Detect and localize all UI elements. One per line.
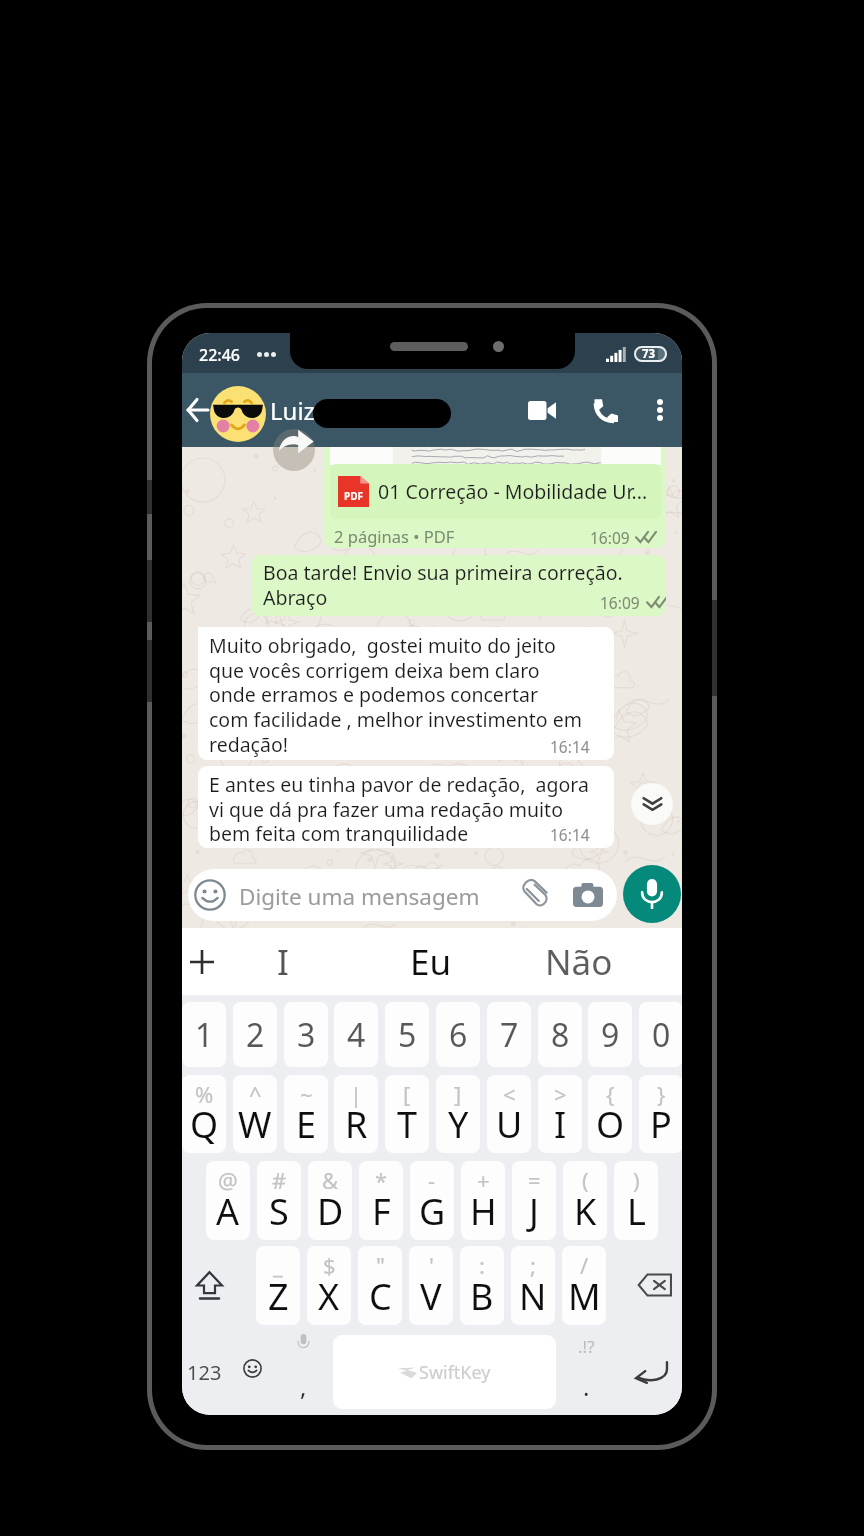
button[interactable]: # (257, 1161, 301, 1240)
staticText: X (318, 1272, 340, 1321)
staticText: E antes eu tinha pavor de redação, agora (209, 771, 589, 798)
staticText: Muito obrigado, gostei muito do jeito (209, 632, 556, 659)
staticText: W (238, 1100, 272, 1149)
staticText: { (606, 1079, 615, 1109)
button[interactable]: Emoji (231, 1346, 274, 1390)
staticText: com facilidade , melhor investimento em (209, 706, 582, 733)
staticText: Não (545, 938, 613, 986)
staticText: P (650, 1100, 672, 1149)
staticText: # (272, 1165, 287, 1195)
staticText: 16:14 (550, 736, 590, 757)
button[interactable]: .!? (564, 1330, 608, 1415)
staticText: PDF (344, 489, 364, 503)
button[interactable]: 6 (436, 1002, 480, 1067)
button[interactable]: - (410, 1161, 454, 1240)
button[interactable]: < (487, 1075, 531, 1153)
staticText: @ (218, 1165, 238, 1195)
staticText: I (554, 1100, 567, 1149)
button[interactable]: [ (385, 1075, 429, 1153)
button[interactable]: 0 (639, 1002, 682, 1067)
staticText: " (376, 1250, 385, 1280)
button[interactable]: Boa tarde! Envio sua primeira correção. (251, 555, 666, 616)
button[interactable]: $ (307, 1246, 351, 1325)
button[interactable]: ~ (284, 1075, 328, 1153)
staticText: $ (323, 1250, 336, 1280)
button[interactable]: / (562, 1246, 606, 1325)
button[interactable]: % (182, 1075, 226, 1153)
button[interactable]: 4 (334, 1002, 378, 1067)
button[interactable]: Voice call (579, 382, 631, 438)
button[interactable]: Muito obrigado, gostei muito do jeito (198, 627, 614, 760)
button[interactable]: 3 (284, 1002, 328, 1067)
button[interactable]: Enter (620, 1346, 682, 1398)
staticText: * (375, 1165, 388, 1195)
button[interactable]: 5 (385, 1002, 429, 1067)
button[interactable]: I (243, 928, 323, 995)
button[interactable]: _ (256, 1246, 300, 1325)
button[interactable]: ^ (233, 1075, 277, 1153)
staticText: bem feita com tranquilidade (209, 820, 469, 847)
button[interactable]: Back (182, 373, 210, 447)
staticText: G (419, 1187, 446, 1236)
staticText: ] (454, 1079, 462, 1109)
button[interactable]: @ (206, 1161, 250, 1240)
staticText: SwiftKey (419, 1360, 491, 1385)
button[interactable]: " (358, 1246, 402, 1325)
button[interactable]: ) (614, 1161, 658, 1240)
button[interactable]: Shift (182, 1252, 236, 1318)
button[interactable]: PDF (324, 447, 666, 548)
staticText: ^ (249, 1079, 262, 1109)
staticText: T (397, 1100, 418, 1149)
staticText: _ (273, 1250, 283, 1280)
button[interactable]: > (538, 1075, 582, 1153)
button[interactable]: Scroll to bottom (631, 783, 673, 825)
staticText: Eu (410, 938, 452, 986)
button[interactable]: ' (409, 1246, 453, 1325)
button[interactable]: Space (333, 1335, 556, 1409)
staticText: O (596, 1100, 625, 1149)
staticText: I (277, 938, 289, 986)
button[interactable]: Digite uma mensagem (188, 869, 617, 921)
button[interactable]: Back (182, 373, 682, 447)
staticText: % (195, 1079, 214, 1109)
button[interactable]: 9 (588, 1002, 632, 1067)
button[interactable]: , (281, 1330, 325, 1415)
button[interactable]: ] (436, 1075, 480, 1153)
button[interactable]: 8 (538, 1002, 582, 1067)
button[interactable]: Add (182, 937, 222, 987)
button[interactable]: More options (638, 382, 682, 438)
button[interactable]: 7 (487, 1002, 531, 1067)
button[interactable]: ; (511, 1246, 555, 1325)
button[interactable]: + (461, 1161, 505, 1240)
staticText: [ (403, 1079, 411, 1109)
button[interactable]: | (334, 1075, 378, 1153)
staticText: 3 (297, 1013, 316, 1057)
staticText: Digite uma mensagem (239, 881, 480, 912)
button[interactable]: E antes eu tinha pavor de redação, agora (198, 766, 614, 848)
button[interactable]: = (512, 1161, 556, 1240)
button[interactable]: 1 (182, 1002, 226, 1067)
staticText: B (470, 1272, 494, 1321)
staticText: L (627, 1187, 646, 1236)
button[interactable]: Não (519, 928, 639, 995)
staticText: redação! (209, 731, 288, 758)
staticText: ) (633, 1165, 640, 1195)
button[interactable]: Video call (516, 382, 568, 438)
button[interactable]: * (359, 1161, 403, 1240)
staticText: E (296, 1100, 317, 1149)
button[interactable]: Backspace (628, 1252, 682, 1318)
button[interactable]: Record voice message (623, 865, 681, 923)
button[interactable]: : (460, 1246, 504, 1325)
button[interactable]: { (588, 1075, 632, 1153)
button[interactable]: Eu (371, 928, 491, 995)
staticText: 16:09 (590, 527, 630, 548)
staticText: F (372, 1187, 391, 1236)
button[interactable]: ( (563, 1161, 607, 1240)
staticText: Luiz (270, 394, 315, 427)
button[interactable]: & (308, 1161, 352, 1240)
staticText: = (528, 1165, 541, 1195)
button[interactable]: 123 (182, 1348, 227, 1396)
button[interactable]: } (639, 1075, 682, 1153)
staticText: 2 páginas • PDF (334, 525, 455, 547)
button[interactable]: 2 (233, 1002, 277, 1067)
